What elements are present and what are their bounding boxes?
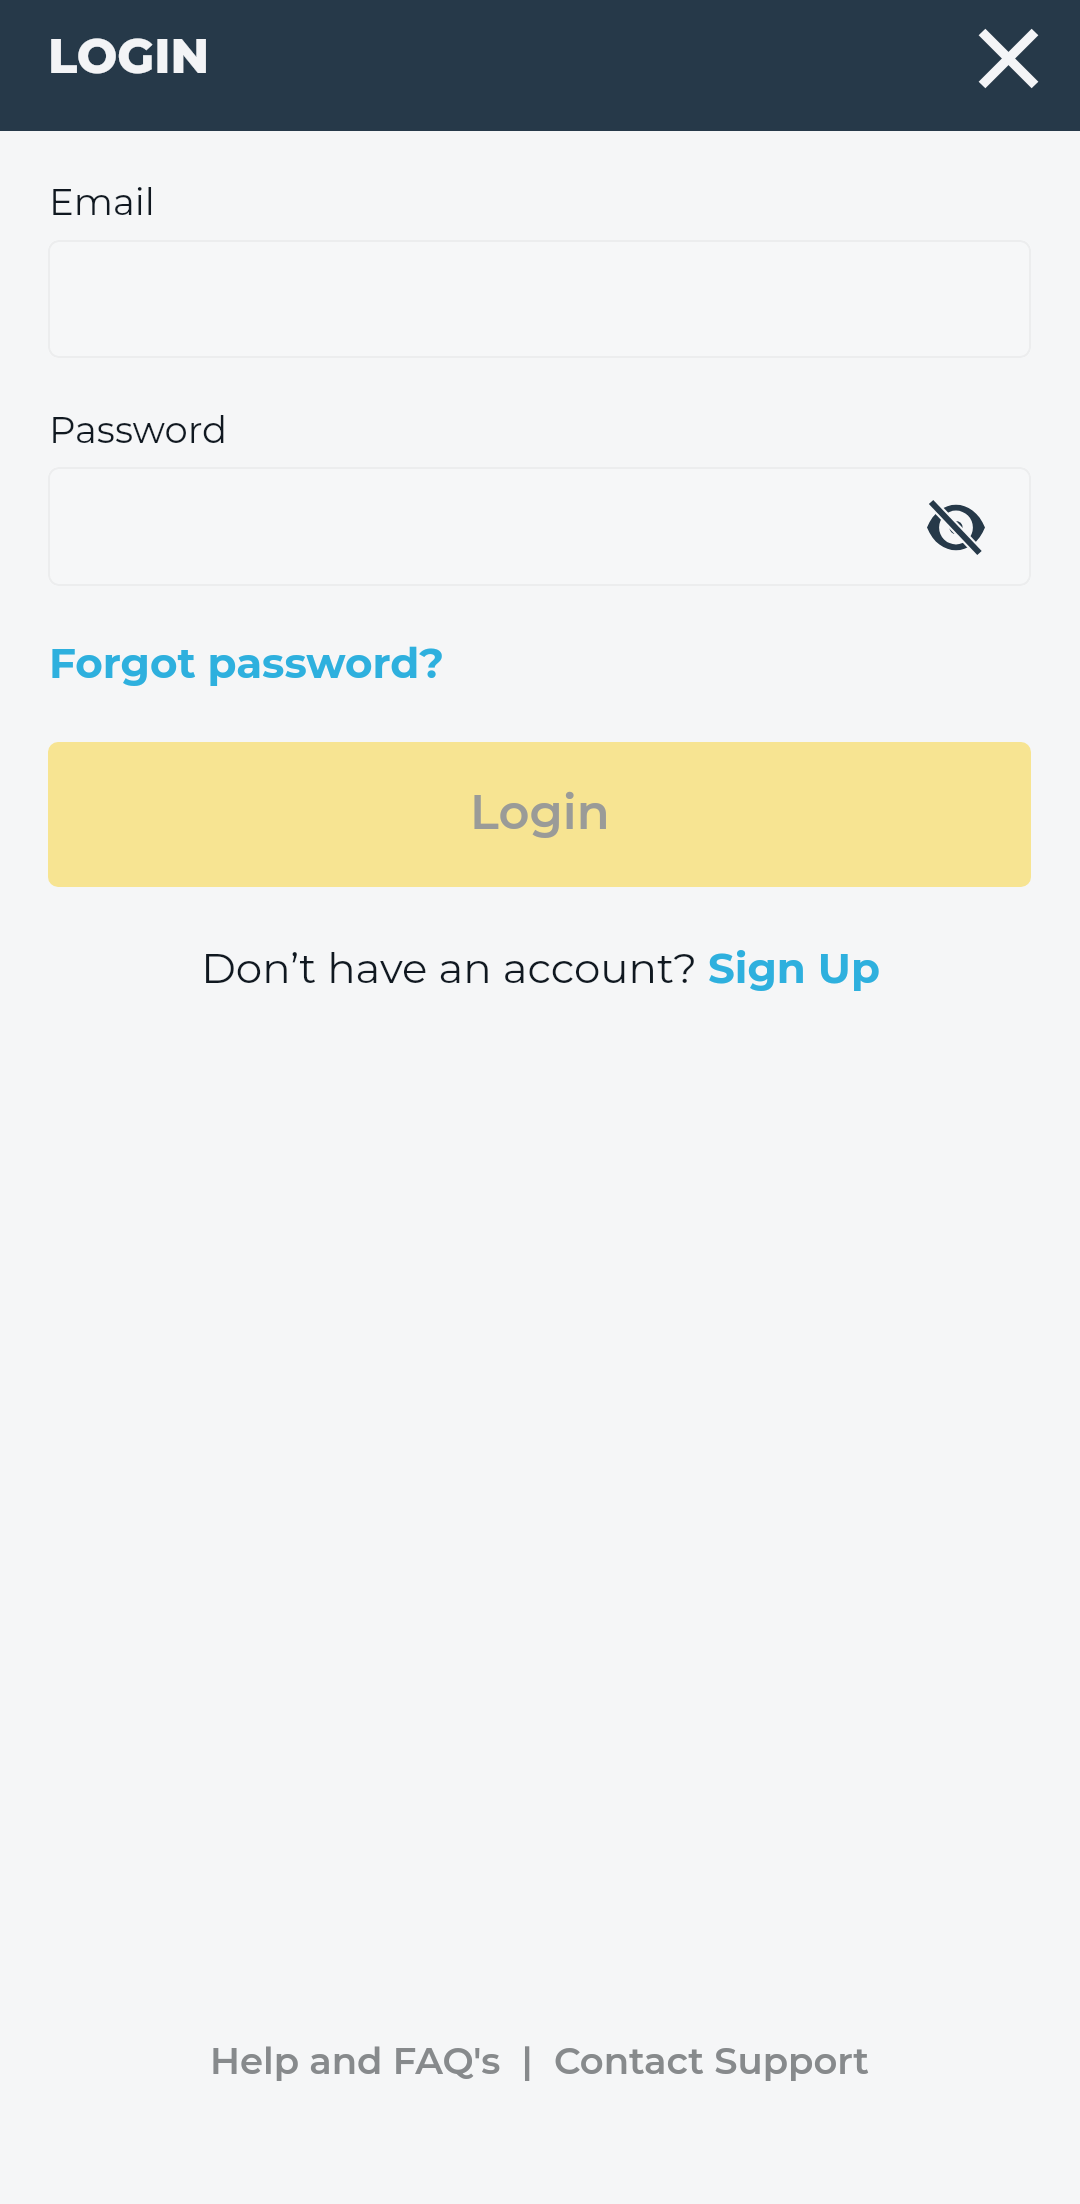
button[interactable]: Contact Support bbox=[554, 2038, 870, 2083]
button[interactable]: Show password bbox=[912, 483, 1000, 571]
button[interactable]: Forgot password? bbox=[49, 637, 445, 688]
staticText: Login bbox=[470, 783, 610, 842]
staticText: LOGIN bbox=[48, 27, 210, 86]
button[interactable]: Don’t have an account? Sign Up bbox=[201, 942, 880, 993]
button[interactable]: Help and FAQ's bbox=[210, 2038, 501, 2083]
button[interactable]: Login bbox=[48, 742, 1031, 887]
staticText: Email bbox=[49, 179, 155, 224]
button[interactable]: Close bbox=[962, 12, 1054, 104]
staticText: Password bbox=[49, 407, 228, 452]
button[interactable]: Show password bbox=[48, 467, 1031, 586]
staticText: | bbox=[501, 2038, 554, 2083]
